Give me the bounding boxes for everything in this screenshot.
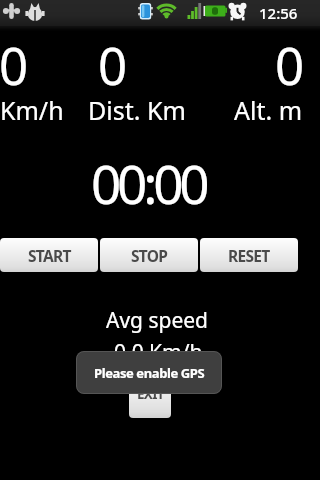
- staticText: 0: [98, 30, 124, 99]
- staticText: Alt. m: [234, 93, 303, 127]
- staticText: RESET: [228, 245, 270, 266]
- button[interactable]: START: [0, 238, 98, 272]
- staticText: 12:56: [259, 3, 298, 23]
- staticText: EXIT: [137, 385, 164, 403]
- staticText: Km/h: [0, 93, 64, 127]
- button[interactable]: STOP: [100, 238, 198, 272]
- staticText: 0: [0, 30, 25, 99]
- button[interactable]: EXIT: [129, 370, 171, 418]
- staticText: Please enable GPS: [94, 364, 205, 382]
- staticText: Avg speed: [106, 306, 209, 335]
- staticText: 0: [275, 30, 301, 99]
- staticText: START: [28, 245, 71, 266]
- button[interactable]: RESET: [200, 238, 298, 272]
- staticText: 0.0 Km/h: [114, 338, 203, 367]
- staticText: STOP: [131, 245, 168, 266]
- staticText: 00:00: [91, 147, 206, 219]
- staticText: Dist. Km: [88, 93, 186, 127]
